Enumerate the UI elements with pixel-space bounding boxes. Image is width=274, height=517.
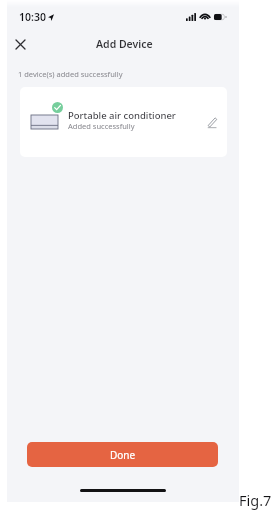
staticText: Added successfully xyxy=(68,121,135,131)
staticText: 1 device(s) added successfully xyxy=(18,69,123,79)
staticText: Fig.7 xyxy=(239,490,272,510)
button[interactable]: Rename device xyxy=(203,113,221,131)
button[interactable]: Done xyxy=(27,442,218,467)
staticText: Done xyxy=(110,448,136,462)
staticText: 10:30 xyxy=(19,10,46,24)
staticText: Add Device xyxy=(96,37,153,51)
button[interactable]: Close xyxy=(9,33,31,55)
staticText: Portable air conditioner xyxy=(68,109,176,122)
button[interactable]: Portable air conditioner xyxy=(20,87,227,157)
